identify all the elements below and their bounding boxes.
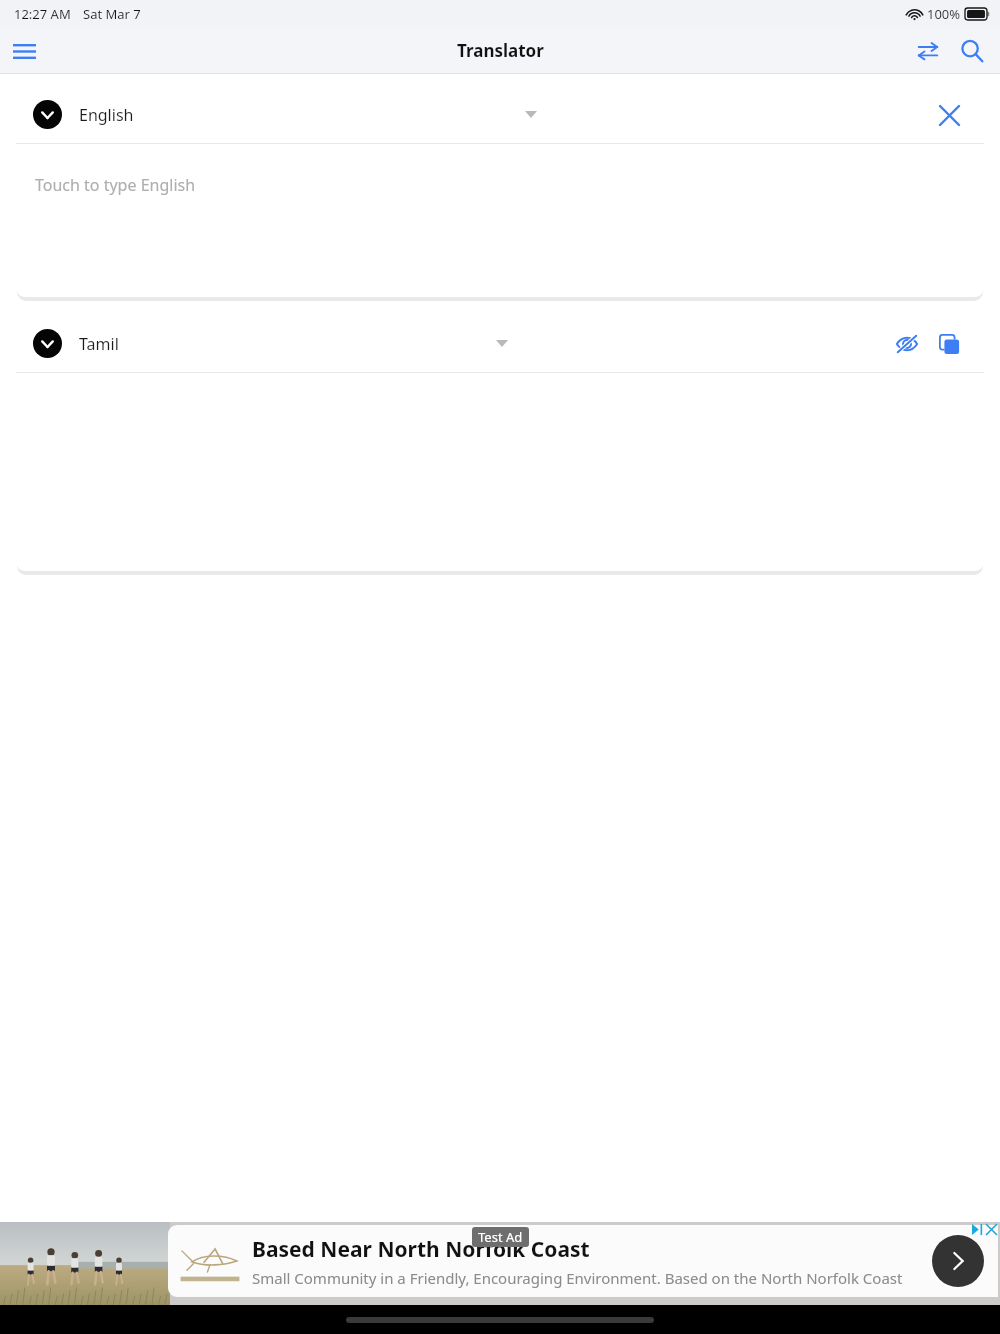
staticText: Test Ad (478, 1228, 523, 1246)
staticText: Tamil (79, 333, 119, 355)
staticText: Sat Mar 7 (83, 5, 141, 23)
button[interactable]: Swap languages (906, 29, 950, 73)
staticText: English (79, 104, 134, 126)
button[interactable]: Advertisement (0, 1222, 1000, 1305)
button[interactable]: Menu (2, 29, 46, 73)
button[interactable]: Tamil (16, 315, 984, 372)
button[interactable]: Clear text (928, 94, 970, 136)
staticText: Translator (457, 39, 544, 62)
staticText: 12:27 AM (14, 5, 71, 23)
button[interactable]: Copy translation (928, 323, 970, 365)
button[interactable]: Open ad (932, 1235, 984, 1287)
button[interactable]: English (16, 86, 984, 143)
staticText: 100% (927, 5, 961, 23)
button[interactable]: Touch to type English (16, 144, 984, 297)
button[interactable]: Hide translation (886, 323, 928, 365)
staticText: Touch to type English (35, 174, 196, 196)
staticText: Small Community in a Friendly, Encouragi… (252, 1268, 903, 1288)
button[interactable]: Close ad (986, 1224, 997, 1235)
other: Ad choices (972, 1224, 983, 1235)
button[interactable]: Search (950, 29, 994, 73)
staticText: Based Near North Norfolk Coast (252, 1235, 590, 1264)
